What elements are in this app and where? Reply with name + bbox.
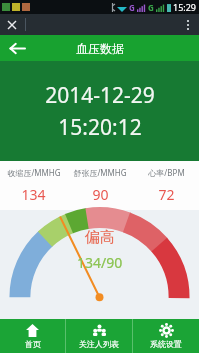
button[interactable]: More options <box>177 14 199 35</box>
staticText: 系统设置 <box>150 339 182 349</box>
staticText: 舒张压/MMHG <box>73 167 127 178</box>
button[interactable]: 收缩压/MMHG <box>0 161 67 210</box>
staticText: G <box>148 2 154 13</box>
button[interactable]: 舒张压/MMHG <box>67 161 133 210</box>
staticText: 134 <box>21 185 46 204</box>
staticText: 90 <box>92 185 109 204</box>
button[interactable]: Back <box>0 35 34 61</box>
button[interactable]: Close <box>0 14 24 35</box>
staticText: 心率/BPM <box>148 167 185 178</box>
button[interactable]: 心率/BPM <box>133 161 199 210</box>
staticText: G <box>129 2 135 13</box>
button[interactable]: 系统设置 <box>133 319 199 353</box>
staticText: 血压数据 <box>76 41 124 56</box>
staticText: 收缩压/MMHG <box>7 167 61 178</box>
staticText: 首页 <box>25 339 41 349</box>
staticText: 2014-12-29 <box>45 81 155 110</box>
staticText: 15:29 <box>173 1 197 13</box>
staticText: 72 <box>158 185 175 204</box>
staticText: 关注人列表 <box>79 339 119 349</box>
staticText: 134/90 <box>77 253 123 272</box>
staticText: 偏高 <box>85 228 115 247</box>
button[interactable]: 首页 <box>0 319 65 353</box>
button[interactable]: 关注人列表 <box>66 319 132 353</box>
staticText: 15:20:12 <box>58 113 142 142</box>
